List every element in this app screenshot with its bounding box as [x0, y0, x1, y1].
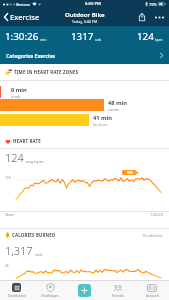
- button[interactable]: Add activity: [78, 284, 91, 297]
- staticText: cardio: [108, 107, 120, 111]
- staticText: 1:30:26: [5, 30, 39, 43]
- staticText: Friends: [112, 293, 124, 298]
- staticText: Account: [146, 293, 159, 298]
- staticText: fat burn: [93, 122, 108, 126]
- staticText: 1:30:26: [150, 212, 163, 217]
- staticText: TIME IN HEART RATE ZONES: [14, 69, 79, 75]
- staticText: HEART RATE: [13, 138, 41, 144]
- staticText: 1317: [71, 30, 94, 43]
- staticText: 1,317: [5, 243, 33, 258]
- staticText: 79%: [149, 2, 157, 7]
- staticText: 126: [5, 176, 11, 180]
- staticText: Categorize Exercise: [6, 52, 56, 59]
- button[interactable]: Challenges: [33, 281, 67, 300]
- staticText: min: [40, 37, 47, 42]
- button[interactable]: Categorize Exercise: [0, 49, 169, 64]
- staticText: Today, 3:44 PM: [72, 19, 98, 24]
- staticText: peak: [11, 94, 20, 98]
- staticText: 0 min: [11, 86, 27, 94]
- staticText: cals: [95, 37, 102, 42]
- staticText: Start: [5, 212, 14, 217]
- button[interactable]: Share: [135, 8, 149, 26]
- staticText: Exercise: [10, 12, 40, 22]
- button[interactable]: More options: [149, 8, 169, 26]
- staticText: 15 cals/min: [142, 233, 163, 238]
- staticText: 6:50 PM: [85, 1, 101, 7]
- staticText: 48 min: [108, 99, 127, 107]
- staticText: Outdoor Bike: [65, 10, 105, 18]
- button[interactable]: Exercise: [0, 8, 46, 26]
- button[interactable]: Account: [135, 281, 169, 300]
- button[interactable]: Dashboard: [0, 281, 33, 300]
- staticText: 41 min: [93, 114, 112, 122]
- staticText: CALORIES BURNED: [12, 232, 56, 238]
- staticText: avg bpm: [26, 158, 44, 164]
- staticText: bpm: [155, 37, 163, 42]
- staticText: 124: [5, 150, 24, 165]
- staticText: Challenges: [41, 293, 59, 298]
- button[interactable]: Friends: [101, 281, 135, 300]
- staticText: 124: [137, 30, 154, 43]
- staticText: 26: [5, 264, 9, 268]
- staticText: Dashboard: [8, 293, 26, 298]
- staticText: Verizon: [16, 2, 31, 7]
- staticText: cals: [35, 251, 43, 257]
- staticText: 150: [127, 171, 133, 175]
